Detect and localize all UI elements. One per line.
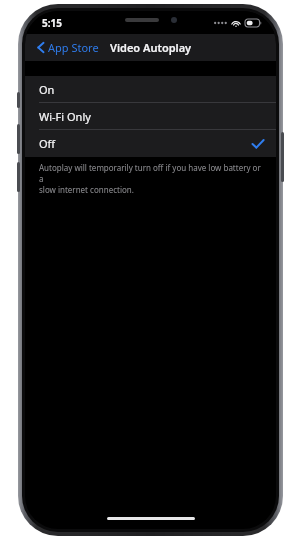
staticText: Video Autoplay <box>110 40 192 55</box>
staticText: App Store <box>48 40 99 55</box>
staticText: Wi-Fi Only <box>39 109 91 124</box>
staticText: slow internet connection. <box>39 184 134 195</box>
staticText: Autoplay will temporarily turn off if yo… <box>39 162 264 184</box>
button[interactable]: On <box>25 76 276 103</box>
staticText: On <box>39 82 55 97</box>
button[interactable]: Wi-Fi Only <box>25 103 276 130</box>
staticText: Off <box>39 136 56 151</box>
staticText: 5:15 <box>42 16 62 30</box>
button[interactable]: App Store <box>35 37 101 58</box>
button[interactable]: Off <box>25 130 276 157</box>
other: Selected <box>252 139 264 149</box>
